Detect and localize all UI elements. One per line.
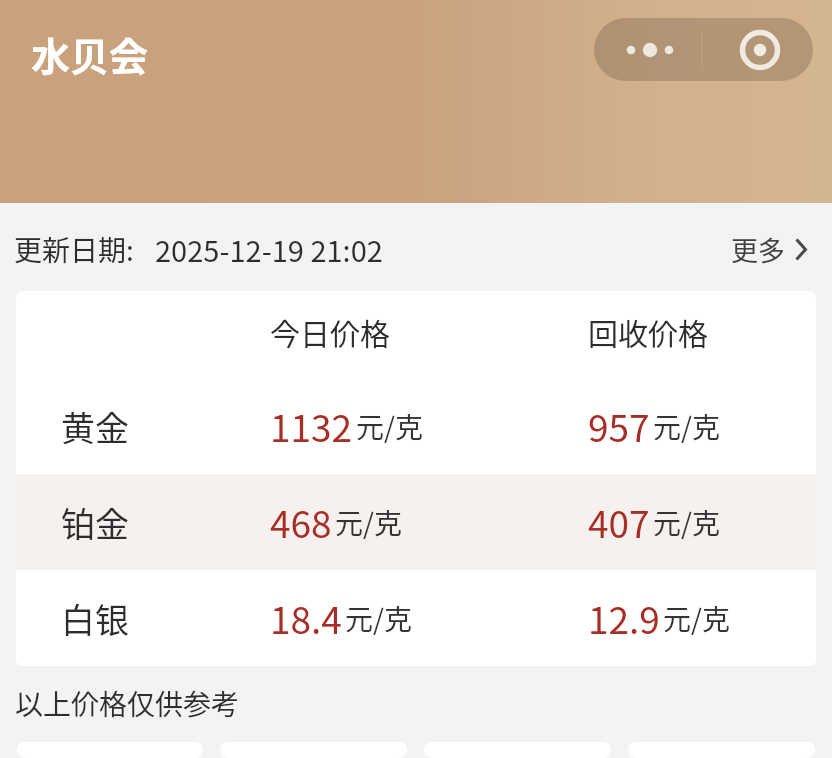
button[interactable]: 黄金 [16, 378, 816, 474]
staticText: 回收价格 [588, 310, 708, 353]
staticText: 水贝会 [31, 26, 149, 82]
staticText: 黄金 [61, 402, 129, 451]
staticText: 957 [588, 399, 650, 453]
staticText: 468 [270, 495, 332, 549]
staticText: 以上价格仅供参考 [15, 683, 240, 724]
button[interactable]: 铂金 [16, 474, 816, 570]
staticText: 元/克 [356, 406, 423, 447]
staticText: 元/克 [653, 406, 720, 447]
button[interactable]: 白银 [16, 570, 816, 666]
staticText: 元/克 [345, 598, 412, 639]
staticText: 407 [588, 495, 650, 549]
staticText: 元/克 [335, 502, 402, 543]
staticText: 白银 [61, 594, 129, 643]
staticText: 今日价格 [270, 310, 390, 353]
button[interactable]: 更多 [731, 218, 807, 281]
staticText: 12.9 [588, 591, 660, 645]
staticText: 元/克 [653, 502, 720, 543]
staticText: 元/克 [663, 598, 730, 639]
staticText: 18.4 [270, 591, 342, 645]
staticText: 更新日期: [14, 229, 134, 270]
staticText: 铂金 [61, 498, 129, 547]
staticText: 2025-12-19 21:02 [155, 228, 383, 270]
button[interactable]: More options [594, 18, 701, 81]
staticText: 更多 [731, 230, 785, 269]
button[interactable]: Close mini program [703, 18, 813, 81]
staticText: 1132 [270, 399, 353, 453]
